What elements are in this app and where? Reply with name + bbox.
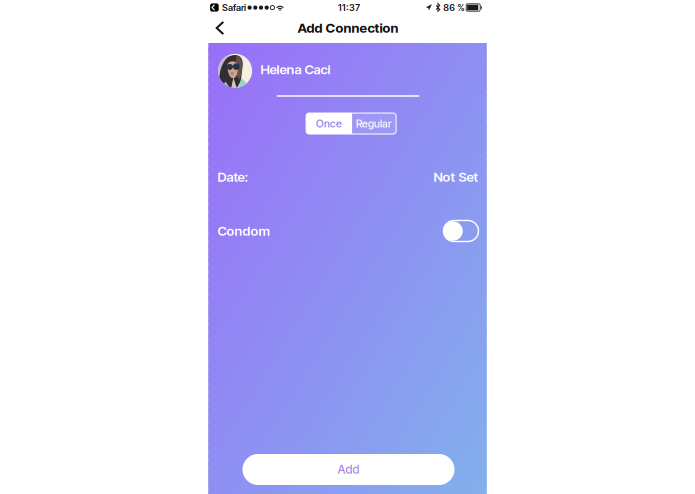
staticText: Not Set	[433, 169, 478, 185]
button[interactable]: Back	[207, 15, 233, 41]
button[interactable]: Condom	[443, 220, 478, 241]
staticText: Date:	[217, 169, 248, 185]
button[interactable]: Add	[242, 454, 454, 485]
staticText: Helena Caci	[260, 61, 330, 77]
staticText: Once	[316, 117, 342, 130]
staticText: Add	[337, 462, 359, 477]
staticText: Regular	[356, 117, 392, 130]
staticText: Safari	[222, 2, 246, 13]
staticText: 11:37	[338, 2, 360, 13]
staticText: 86 %	[443, 2, 465, 13]
button[interactable]: Not Set	[433, 169, 478, 185]
staticText: Condom	[217, 223, 269, 239]
button[interactable]: Regular	[352, 113, 396, 134]
button[interactable]: Back to Safari	[210, 2, 246, 13]
staticText: Add Connection	[297, 20, 398, 36]
button[interactable]: Once	[306, 113, 352, 134]
